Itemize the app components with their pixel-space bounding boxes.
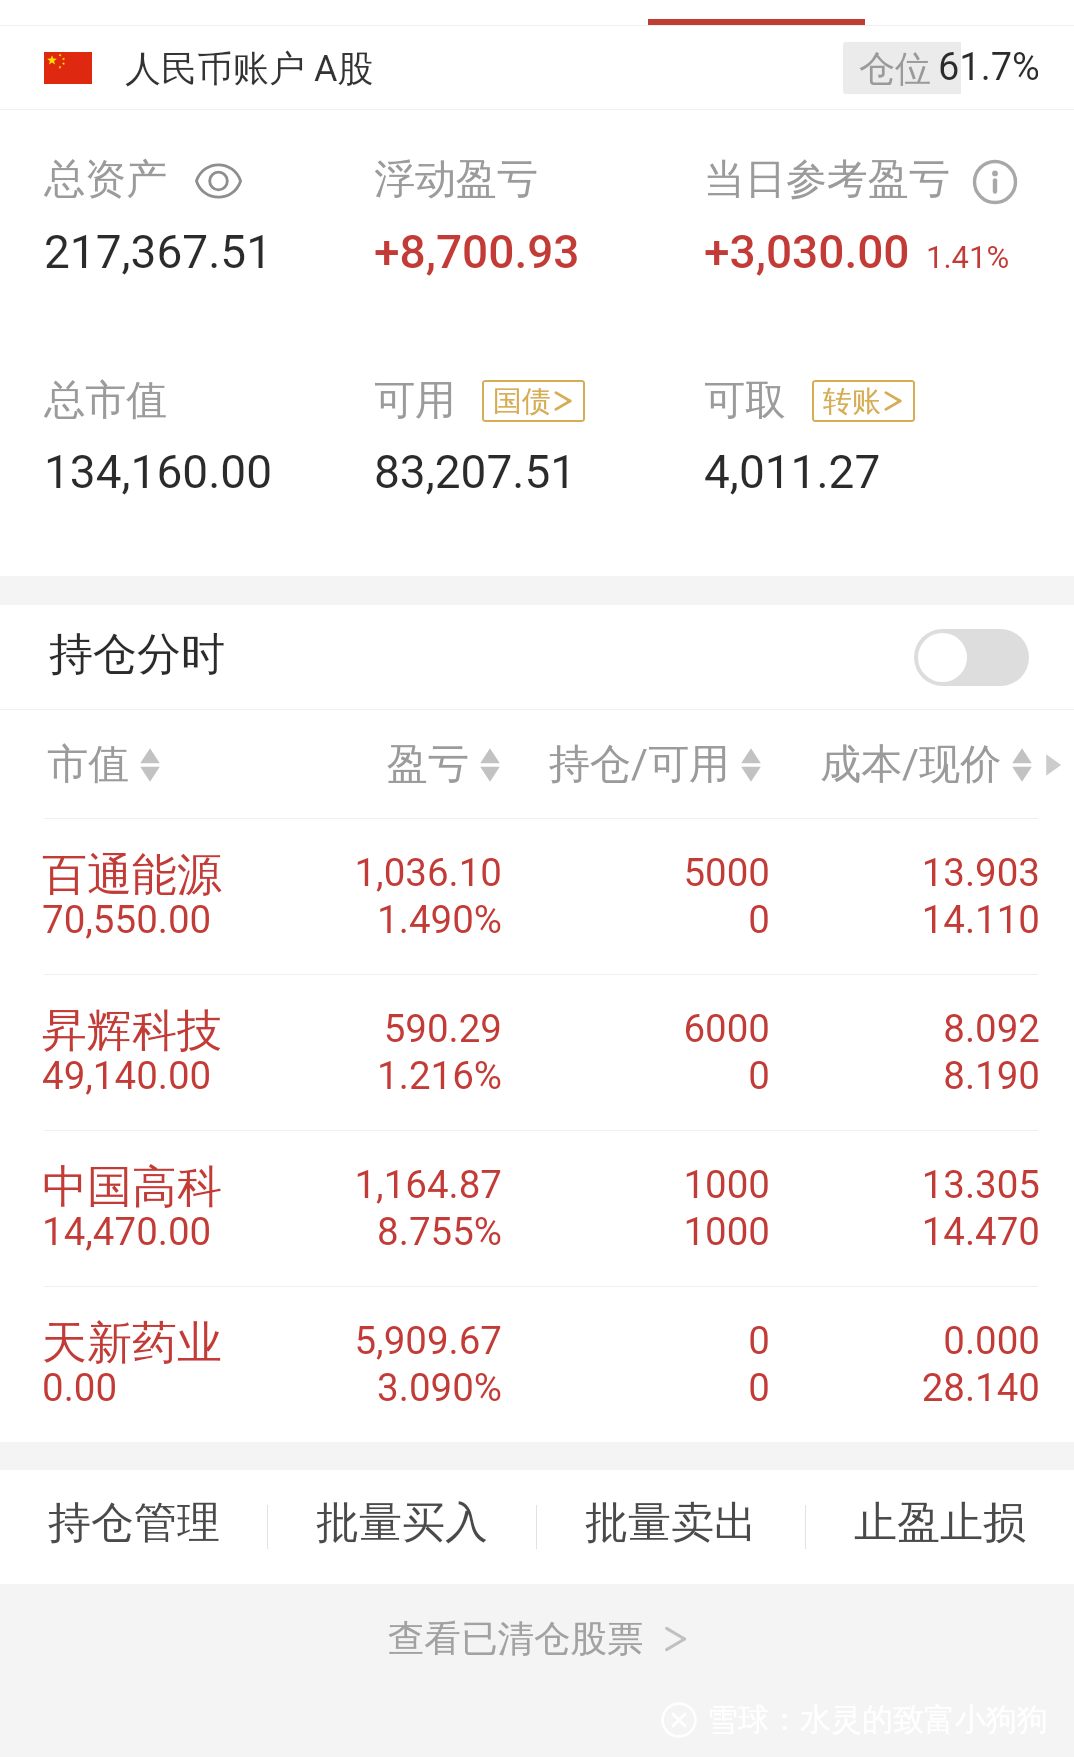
button[interactable]: 批量买入	[268, 1470, 536, 1584]
staticText: 国债	[493, 383, 551, 420]
button[interactable]: 持仓/可用	[549, 739, 761, 791]
staticText: 49,140.00	[42, 1053, 212, 1098]
staticText: 590.29	[0, 1006, 502, 1051]
staticText: 13.903	[0, 850, 1040, 895]
staticText: +3,030.00	[704, 225, 910, 279]
staticText: 盈亏	[387, 739, 469, 791]
staticText: 1000	[0, 1209, 770, 1254]
staticText: 5,909.67	[0, 1318, 502, 1363]
staticText: 雪球：水灵的致富小狗狗	[707, 1700, 1048, 1739]
button[interactable]: 转账	[812, 380, 915, 422]
other: Info	[972, 159, 1018, 205]
staticText: 1,164.87	[0, 1162, 502, 1207]
staticText: 8.755%	[0, 1209, 502, 1254]
staticText: 14,470.00	[42, 1209, 212, 1254]
button[interactable]: 市值	[47, 739, 160, 791]
staticText: 当日参考盈亏	[704, 154, 950, 206]
staticText: 0	[0, 1318, 770, 1363]
staticText: 8.190	[0, 1053, 1040, 1098]
staticText: 70,550.00	[42, 897, 212, 942]
staticText: 4,011.27	[704, 445, 881, 499]
button[interactable]: 查看已清仓股票	[388, 1616, 687, 1662]
staticText: 总资产	[44, 154, 167, 206]
staticText: 1.41%	[926, 239, 1010, 275]
button[interactable]: 持仓管理	[0, 1470, 267, 1584]
staticText: 6000	[0, 1006, 770, 1051]
staticText: 14.470	[0, 1209, 1040, 1254]
staticText: 仓位	[859, 46, 931, 91]
staticText: 0.000	[0, 1318, 1040, 1363]
staticText: 持仓管理	[48, 1496, 220, 1550]
staticText: 天新药业	[42, 1315, 222, 1372]
staticText: 昇辉科技	[42, 1003, 222, 1060]
button[interactable]: 百通能源	[0, 819, 1074, 974]
staticText: 3.090%	[0, 1365, 502, 1410]
staticText: 持仓/可用	[549, 739, 730, 791]
staticText: 中国高科	[42, 1159, 222, 1216]
staticText: 查看已清仓股票	[388, 1616, 644, 1662]
staticText: 13.305	[0, 1162, 1040, 1207]
staticText: 83,207.51	[374, 445, 577, 499]
staticText: 持仓分时	[49, 627, 225, 682]
other: More columns	[1044, 751, 1062, 779]
button[interactable]: 天新药业	[0, 1287, 1074, 1442]
staticText: 8.092	[0, 1006, 1040, 1051]
staticText: 28.140	[0, 1365, 1040, 1410]
other: China A-share account	[44, 52, 92, 84]
staticText: 市值	[47, 739, 129, 791]
button[interactable]: 成本/现价	[820, 739, 1062, 791]
staticText: 1,036.10	[0, 850, 502, 895]
staticText: 可用	[374, 375, 456, 427]
staticText: 浮动盈亏	[374, 154, 538, 206]
button[interactable]: 盈亏	[387, 739, 500, 791]
staticText: 14.110	[0, 897, 1040, 942]
staticText: 1000	[0, 1162, 770, 1207]
staticText: 可取	[704, 375, 786, 427]
staticText: 转账	[823, 383, 881, 420]
staticText: +8,700.93	[374, 225, 580, 279]
button[interactable]: 中国高科	[0, 1131, 1074, 1286]
staticText: 61.7%	[938, 45, 1038, 90]
staticText: 1.490%	[0, 897, 502, 942]
staticText: 1.216%	[0, 1053, 502, 1098]
staticText: 0	[0, 897, 770, 942]
staticText: 人民币账户 A股	[125, 46, 374, 91]
staticText: 134,160.00	[44, 445, 273, 499]
staticText: 5000	[0, 850, 770, 895]
button[interactable]: 批量卖出	[537, 1470, 805, 1584]
button[interactable]: 止盈止损	[806, 1470, 1074, 1584]
button[interactable]: 国债	[482, 380, 585, 422]
staticText: 止盈止损	[854, 1496, 1026, 1550]
staticText: 成本/现价	[820, 739, 1001, 791]
staticText: 批量买入	[316, 1496, 488, 1550]
staticText: 批量卖出	[585, 1496, 757, 1550]
staticText: 217,367.51	[44, 225, 273, 279]
staticText: 总市值	[44, 375, 167, 427]
staticText: 0	[0, 1365, 770, 1410]
staticText: 百通能源	[42, 847, 222, 904]
button[interactable]: 仓位	[843, 42, 1038, 94]
staticText: 0.00	[42, 1365, 118, 1410]
staticText: 0	[0, 1053, 770, 1098]
other: Toggle balance visibility	[195, 163, 242, 199]
button[interactable]: Toggle intraday positions	[914, 629, 1029, 686]
button[interactable]: 昇辉科技	[0, 975, 1074, 1130]
